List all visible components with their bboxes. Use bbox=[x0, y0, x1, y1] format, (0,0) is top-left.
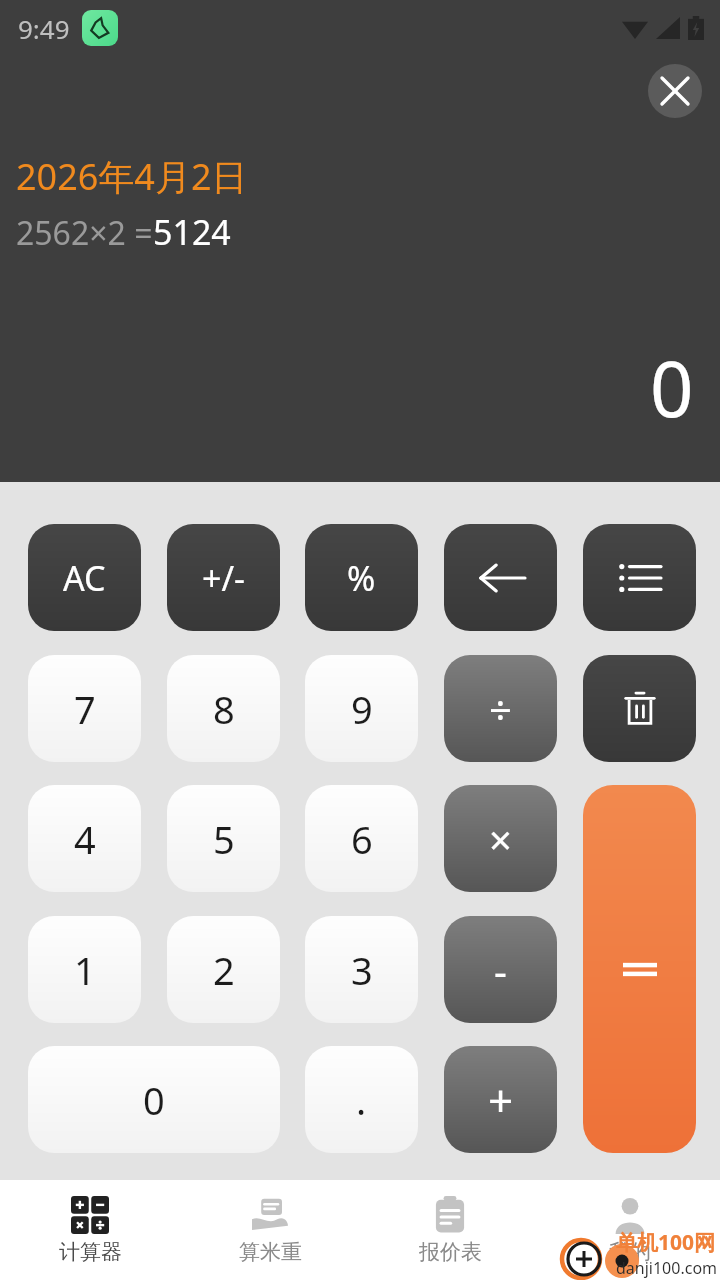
staticText: AC bbox=[63, 555, 106, 601]
staticText: 3 bbox=[351, 944, 373, 996]
button[interactable]: 1 bbox=[28, 916, 141, 1023]
button[interactable]: 9 bbox=[305, 655, 418, 762]
staticText: 0 bbox=[143, 1074, 165, 1126]
button[interactable]: 6 bbox=[305, 785, 418, 892]
button[interactable]: . bbox=[305, 1046, 418, 1153]
button[interactable]: ÷ bbox=[444, 655, 557, 762]
button[interactable]: Delete bbox=[583, 655, 696, 762]
staticText: 0 bbox=[650, 336, 694, 440]
staticText: + bbox=[488, 1070, 514, 1130]
staticText: 单机100网 bbox=[616, 1228, 716, 1257]
button[interactable]: 计算器 bbox=[0, 1180, 180, 1280]
staticText: 7 bbox=[74, 683, 96, 735]
staticText: % bbox=[347, 555, 376, 601]
staticText: 6 bbox=[351, 813, 373, 865]
button[interactable]: Backspace bbox=[444, 524, 557, 631]
staticText: 5124 bbox=[153, 209, 231, 255]
button[interactable]: 报价表 bbox=[360, 1180, 540, 1280]
staticText: 我的 bbox=[609, 1239, 651, 1265]
staticText: danji100.com bbox=[616, 1257, 718, 1278]
staticText: ÷ bbox=[489, 682, 512, 736]
button[interactable]: 算米重 bbox=[180, 1180, 360, 1280]
staticText: 2026年4月2日 bbox=[16, 152, 248, 201]
staticText: 4 bbox=[74, 813, 96, 865]
button[interactable]: % bbox=[305, 524, 418, 631]
button[interactable]: 我的 bbox=[540, 1180, 720, 1280]
button[interactable]: 2 bbox=[167, 916, 280, 1023]
button[interactable]: +/- bbox=[167, 524, 280, 631]
button[interactable]: AC bbox=[28, 524, 141, 631]
button[interactable]: Close bbox=[648, 64, 702, 118]
button[interactable]: - bbox=[444, 916, 557, 1023]
button[interactable]: + bbox=[444, 1046, 557, 1153]
button[interactable]: 7 bbox=[28, 655, 141, 762]
button[interactable]: 5 bbox=[167, 785, 280, 892]
button[interactable]: 0 bbox=[28, 1046, 280, 1153]
button[interactable] bbox=[583, 785, 696, 1153]
staticText: +/- bbox=[202, 555, 246, 601]
staticText: . bbox=[356, 1074, 367, 1126]
button[interactable]: × bbox=[444, 785, 557, 892]
staticText: 8 bbox=[213, 683, 235, 735]
staticText: × bbox=[489, 812, 512, 866]
staticText: 2 bbox=[213, 944, 235, 996]
button[interactable]: History bbox=[583, 524, 696, 631]
button[interactable]: 3 bbox=[305, 916, 418, 1023]
staticText: 9 bbox=[351, 683, 373, 735]
staticText: 计算器 bbox=[59, 1239, 122, 1265]
staticText: 算米重 bbox=[239, 1239, 302, 1265]
button[interactable]: 8 bbox=[167, 655, 280, 762]
button[interactable]: 4 bbox=[28, 785, 141, 892]
staticText: 报价表 bbox=[419, 1239, 482, 1265]
staticText: 1 bbox=[74, 944, 96, 996]
staticText: - bbox=[494, 943, 507, 997]
staticText: 2562×2 = bbox=[16, 211, 153, 255]
staticText: 9:49 bbox=[18, 11, 70, 46]
staticText: 5 bbox=[213, 813, 235, 865]
